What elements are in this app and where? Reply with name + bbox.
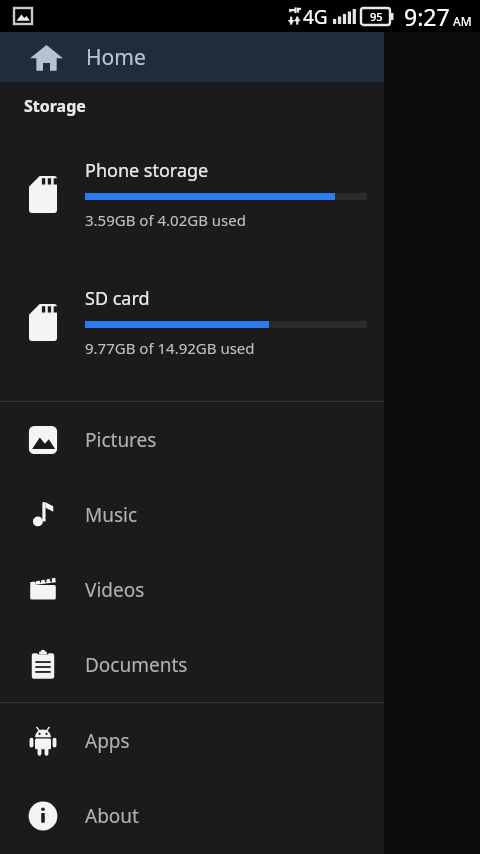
staticText: Videos [85,577,145,603]
staticText: 9:27 [404,1,450,32]
button[interactable]: Videos [0,552,384,627]
staticText: About [85,803,139,829]
staticText: Home [86,43,146,72]
staticText: Apps [85,728,130,754]
other: Pictures [27,424,59,456]
staticText: Music [85,502,138,528]
button[interactable]: Music [0,477,384,552]
staticText: 4G [303,4,328,30]
button[interactable]: Home [0,32,384,82]
staticText: SD card [85,286,150,311]
staticText: Documents [85,652,188,678]
other: About [27,800,59,832]
button[interactable]: About [0,778,384,853]
staticText: AM [453,13,472,29]
button[interactable]: Apps [0,703,384,778]
other: Apps [27,725,59,757]
button[interactable]: Phone storage [0,130,384,258]
staticText: 95 [370,9,383,24]
staticText: Phone storage [85,158,209,183]
staticText: 9.77GB of 14.92GB used [85,338,255,358]
other: Videos [27,574,59,606]
button[interactable]: SD card [0,258,384,386]
button[interactable]: Pictures [0,402,384,477]
other: Documents [27,649,59,681]
staticText: Pictures [85,427,157,453]
staticText: Storage [24,95,86,117]
button[interactable]: Documents [0,627,384,702]
other: Music [27,499,59,531]
staticText: 3.59GB of 4.02GB used [85,210,246,230]
